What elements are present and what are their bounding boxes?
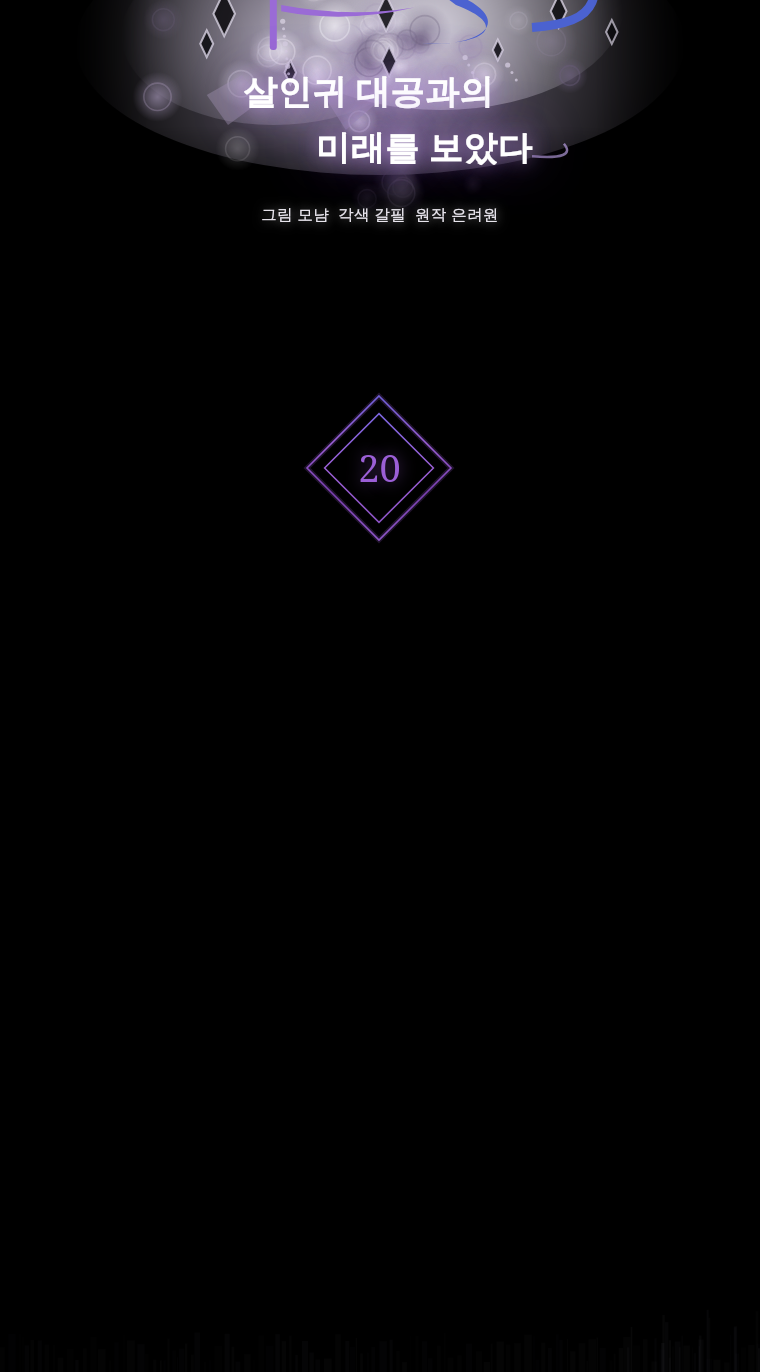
staticText: 그림 모냠 각색 갈필 원작 은려원 <box>261 203 499 224</box>
staticText: 살인귀 대공과의 <box>243 68 494 114</box>
staticText: 20 <box>358 441 401 493</box>
staticText: 미래를 보았다 <box>316 124 533 170</box>
staticText: 미래를 보았다 <box>316 124 533 170</box>
staticText: 살인귀 대공과의 <box>243 68 494 114</box>
button[interactable]: Episode 20 <box>299 388 459 548</box>
